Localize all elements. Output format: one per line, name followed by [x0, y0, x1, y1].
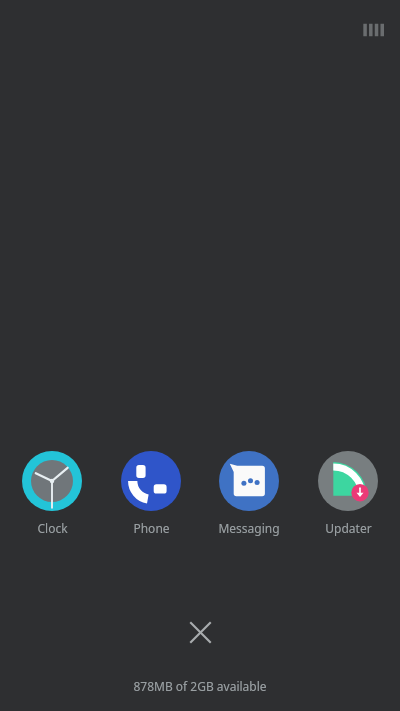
staticText: Phone	[133, 520, 170, 536]
button[interactable]: Close	[178, 610, 222, 654]
staticText: Clock	[37, 520, 68, 536]
staticText: 878MB of 2GB available	[0, 678, 400, 694]
staticText: Updater	[325, 520, 372, 536]
other: Status indicator	[362, 22, 384, 38]
button[interactable]: Messaging	[203, 449, 295, 538]
button[interactable]: Clock	[6, 449, 98, 538]
staticText: Messaging	[218, 520, 280, 536]
button[interactable]: Phone	[105, 449, 197, 538]
button[interactable]: Updater	[302, 449, 394, 538]
